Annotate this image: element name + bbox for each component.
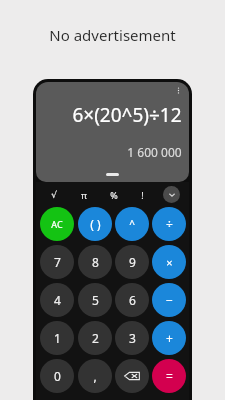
button[interactable]: 1 bbox=[40, 321, 74, 355]
staticText: % bbox=[110, 189, 118, 201]
button[interactable]: π bbox=[69, 185, 99, 204]
staticText: 8 bbox=[92, 254, 99, 270]
staticText: 5 bbox=[92, 292, 99, 308]
button[interactable]: 9 bbox=[115, 245, 149, 279]
staticText: π bbox=[81, 189, 87, 201]
button[interactable]: 4 bbox=[40, 283, 74, 317]
staticText: 6×(20^5)÷12 bbox=[72, 102, 182, 128]
staticText: ! bbox=[141, 189, 144, 201]
button[interactable]: 6 bbox=[115, 283, 149, 317]
staticText: 2 bbox=[92, 330, 99, 346]
staticText: − bbox=[166, 292, 173, 308]
staticText: 1 600 000 bbox=[127, 144, 182, 160]
staticText: = bbox=[166, 368, 173, 384]
button[interactable]: = bbox=[152, 359, 186, 393]
staticText: 6 bbox=[129, 292, 136, 308]
staticText: 3 bbox=[129, 330, 136, 346]
staticText: AC bbox=[51, 218, 63, 230]
button[interactable]: 2 bbox=[78, 321, 112, 355]
button[interactable]: More options bbox=[172, 84, 185, 97]
button[interactable]: + bbox=[152, 321, 186, 355]
button[interactable]: ^ bbox=[115, 207, 149, 241]
button[interactable]: ÷ bbox=[152, 207, 186, 241]
button[interactable]: ( ) bbox=[78, 207, 112, 241]
button[interactable]: 0 bbox=[40, 359, 74, 393]
button[interactable]: 3 bbox=[115, 321, 149, 355]
button[interactable]: − bbox=[152, 283, 186, 317]
button[interactable]: Backspace bbox=[115, 359, 149, 393]
staticText: ÷ bbox=[166, 216, 173, 232]
button[interactable]: AC bbox=[40, 207, 74, 241]
staticText: , bbox=[93, 368, 97, 384]
button[interactable]: 8 bbox=[78, 245, 112, 279]
staticText: √ bbox=[51, 190, 57, 200]
staticText: ^ bbox=[129, 217, 135, 231]
staticText: ( ) bbox=[90, 216, 101, 232]
staticText: 0 bbox=[54, 368, 61, 384]
staticText: × bbox=[166, 255, 173, 270]
staticText: + bbox=[166, 330, 173, 346]
staticText: No advertisement bbox=[49, 25, 176, 45]
staticText: 4 bbox=[54, 292, 61, 308]
staticText: 7 bbox=[54, 254, 61, 270]
button[interactable]: , bbox=[78, 359, 112, 393]
button[interactable]: × bbox=[152, 245, 186, 279]
button[interactable]: 7 bbox=[40, 245, 74, 279]
staticText: 1 bbox=[54, 330, 61, 346]
staticText: 9 bbox=[129, 254, 136, 270]
button[interactable]: ! bbox=[128, 185, 157, 204]
button[interactable]: 5 bbox=[78, 283, 112, 317]
button[interactable]: % bbox=[99, 185, 128, 204]
button[interactable]: √ bbox=[39, 185, 69, 204]
button[interactable]: Show more functions bbox=[163, 186, 180, 203]
